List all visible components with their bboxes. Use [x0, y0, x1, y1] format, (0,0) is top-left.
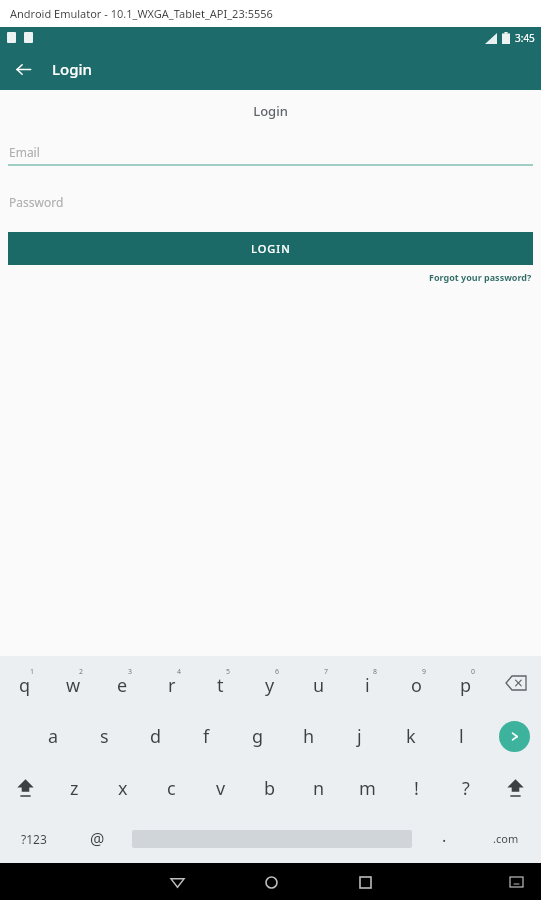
button[interactable]: m — [343, 762, 392, 814]
staticText: 5 — [226, 667, 231, 677]
staticText: Android Emulator - 10.1_WXGA_Tablet_API_… — [10, 6, 273, 21]
staticText: c — [167, 776, 176, 801]
button[interactable]: ? — [441, 762, 490, 814]
button[interactable]: s — [79, 710, 130, 762]
staticText: l — [459, 724, 464, 749]
staticText: b — [264, 776, 276, 801]
button[interactable]: Home — [254, 865, 288, 899]
button[interactable]: Password — [0, 189, 541, 215]
button[interactable]: Space — [126, 814, 418, 863]
button[interactable]: Email — [0, 139, 541, 166]
staticText: u — [313, 673, 325, 698]
staticText: Login — [0, 102, 541, 120]
button[interactable]: Recent apps — [348, 865, 382, 899]
button[interactable]: 4 — [147, 656, 196, 710]
staticText: t — [217, 673, 224, 698]
staticText: .com — [493, 831, 519, 846]
staticText: a — [48, 724, 59, 749]
button[interactable]: ?123 — [0, 814, 68, 863]
button[interactable]: b — [245, 762, 294, 814]
staticText: 8 — [373, 667, 378, 677]
staticText: y — [265, 673, 275, 698]
staticText: q — [19, 673, 31, 698]
button[interactable]: v — [196, 762, 245, 814]
button[interactable]: Enter — [487, 710, 541, 762]
staticText: 4 — [177, 667, 182, 677]
staticText: m — [359, 776, 376, 801]
button[interactable]: 7 — [294, 656, 343, 710]
staticText: Email — [9, 144, 40, 160]
button[interactable]: Backspace — [490, 656, 541, 710]
staticText: h — [303, 724, 315, 749]
button[interactable]: j — [334, 710, 385, 762]
button[interactable]: Shift — [490, 762, 541, 814]
staticText: 2 — [79, 667, 84, 677]
staticText: Login — [52, 59, 92, 79]
staticText: r — [168, 673, 176, 698]
button[interactable]: Back — [160, 865, 194, 899]
staticText: w — [66, 673, 81, 698]
button[interactable]: h — [283, 710, 334, 762]
staticText: Password — [9, 194, 64, 210]
staticText: . — [442, 825, 447, 847]
button[interactable]: Hide keyboard — [503, 869, 529, 895]
staticText: 3 — [128, 667, 133, 677]
button[interactable]: 3 — [98, 656, 147, 710]
staticText: e — [117, 673, 128, 698]
button[interactable]: .com — [471, 814, 541, 863]
staticText: p — [460, 673, 472, 698]
staticText: 7 — [324, 667, 329, 677]
staticText: @ — [90, 828, 105, 850]
staticText: s — [100, 724, 109, 749]
button[interactable]: . — [418, 814, 471, 863]
staticText: f — [203, 724, 210, 749]
staticText: 3:45 — [515, 31, 535, 45]
button[interactable]: 6 — [245, 656, 294, 710]
button[interactable]: 2 — [49, 656, 98, 710]
button[interactable]: 0 — [441, 656, 490, 710]
staticText: d — [150, 724, 162, 749]
staticText: z — [70, 776, 79, 801]
staticText: 9 — [422, 667, 427, 677]
staticText: i — [365, 673, 370, 698]
staticText: 1 — [30, 667, 35, 677]
staticText: o — [411, 673, 422, 698]
staticText: ? — [462, 776, 470, 801]
staticText: ! — [414, 776, 419, 801]
staticText: 6 — [275, 667, 280, 677]
staticText: n — [313, 776, 325, 801]
button[interactable]: l — [436, 710, 487, 762]
button[interactable]: d — [130, 710, 181, 762]
button[interactable]: 1 — [0, 656, 49, 710]
button[interactable]: c — [147, 762, 196, 814]
staticText: j — [357, 724, 362, 749]
button[interactable]: Back — [8, 54, 38, 84]
button[interactable]: g — [232, 710, 283, 762]
staticText: g — [252, 724, 264, 749]
staticText: ?123 — [21, 831, 47, 847]
button[interactable]: x — [98, 762, 147, 814]
button[interactable]: 9 — [392, 656, 441, 710]
button[interactable]: Shift — [0, 762, 50, 814]
button[interactable]: ! — [392, 762, 441, 814]
button[interactable]: f — [181, 710, 232, 762]
staticText: Forgot your password? — [429, 271, 532, 283]
staticText: x — [118, 776, 128, 801]
button[interactable]: k — [385, 710, 436, 762]
button[interactable]: a — [28, 710, 79, 762]
button[interactable]: @ — [68, 814, 126, 863]
button[interactable]: LOGIN — [8, 232, 533, 265]
button[interactable]: z — [50, 762, 98, 814]
button[interactable]: Forgot your password? — [429, 271, 532, 283]
staticText: LOGIN — [251, 241, 291, 256]
button[interactable]: 8 — [343, 656, 392, 710]
button[interactable]: n — [294, 762, 343, 814]
staticText: v — [216, 776, 226, 801]
staticText: 0 — [471, 667, 476, 677]
staticText: k — [406, 724, 416, 749]
button[interactable]: 5 — [196, 656, 245, 710]
